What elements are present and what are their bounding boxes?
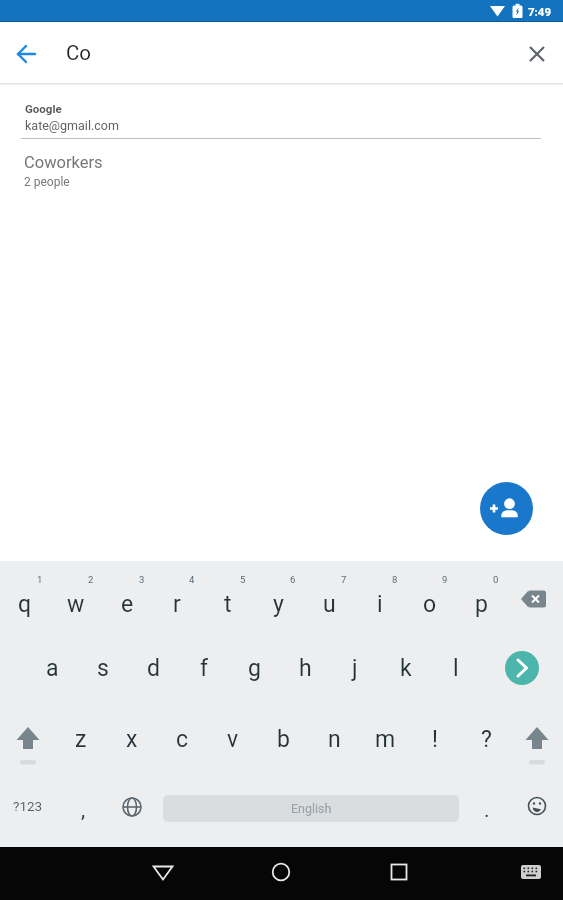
staticText: q bbox=[18, 591, 32, 618]
button[interactable] bbox=[114, 789, 150, 825]
staticText: w bbox=[67, 591, 85, 618]
button[interactable] bbox=[0, 142, 563, 192]
staticText: f bbox=[200, 655, 208, 682]
staticText: p bbox=[475, 591, 488, 618]
staticText: ? bbox=[481, 726, 492, 753]
button[interactable] bbox=[0, 90, 563, 138]
staticText: s bbox=[97, 655, 109, 682]
staticText: ! bbox=[432, 726, 438, 753]
staticText: b bbox=[277, 726, 290, 753]
staticText: j bbox=[352, 655, 358, 682]
button[interactable]: m bbox=[345, 719, 425, 759]
staticText: ?123 bbox=[13, 798, 43, 814]
button[interactable]: o bbox=[390, 584, 470, 624]
staticText: Google bbox=[25, 102, 62, 115]
staticText: . bbox=[484, 798, 490, 823]
button[interactable]: u bbox=[289, 584, 369, 624]
staticText: u bbox=[323, 591, 336, 618]
button[interactable] bbox=[505, 651, 539, 685]
button[interactable] bbox=[381, 854, 417, 890]
button[interactable]: y bbox=[238, 584, 318, 624]
button[interactable]: q bbox=[0, 584, 65, 624]
staticText: x bbox=[126, 726, 138, 753]
button[interactable] bbox=[517, 720, 557, 770]
staticText: o bbox=[423, 591, 437, 618]
button[interactable]: g bbox=[214, 648, 294, 688]
button[interactable]: ! bbox=[395, 719, 475, 759]
button[interactable]: l bbox=[416, 648, 496, 688]
staticText: kate@gmail.com bbox=[25, 118, 119, 133]
button[interactable]: e bbox=[87, 584, 167, 624]
button[interactable]: a bbox=[12, 648, 92, 688]
staticText: l bbox=[453, 655, 459, 682]
staticText: m bbox=[375, 726, 396, 753]
staticText: n bbox=[328, 726, 341, 753]
staticText: 2 people bbox=[24, 175, 70, 189]
button[interactable] bbox=[519, 788, 555, 824]
staticText: r bbox=[173, 591, 181, 618]
staticText: 6 bbox=[290, 574, 296, 585]
button[interactable]: b bbox=[243, 719, 323, 759]
staticText: 5 bbox=[240, 574, 246, 585]
button[interactable]: , bbox=[43, 790, 123, 830]
button[interactable]: v bbox=[193, 719, 273, 759]
staticText: i bbox=[377, 591, 383, 618]
staticText: 1 bbox=[37, 574, 43, 585]
button[interactable]: . bbox=[447, 790, 527, 830]
staticText: , bbox=[81, 798, 86, 823]
button[interactable] bbox=[515, 580, 555, 618]
button[interactable]: t bbox=[188, 584, 268, 624]
staticText: Coworkers bbox=[24, 153, 103, 172]
button[interactable]: s bbox=[63, 648, 143, 688]
staticText: e bbox=[121, 591, 134, 618]
staticText: d bbox=[147, 655, 160, 682]
staticText: Co bbox=[66, 41, 92, 65]
button[interactable]: z bbox=[41, 719, 121, 759]
button[interactable]: n bbox=[294, 719, 374, 759]
staticText: h bbox=[299, 655, 312, 682]
staticText: English bbox=[291, 801, 332, 816]
staticText: t bbox=[224, 591, 232, 618]
button[interactable] bbox=[145, 854, 181, 890]
staticText: 9 bbox=[442, 574, 448, 585]
staticText: 7 bbox=[341, 574, 347, 585]
button[interactable]: x bbox=[92, 719, 172, 759]
button[interactable]: English bbox=[163, 795, 459, 822]
staticText: 7:49 bbox=[528, 5, 552, 18]
staticText: 3 bbox=[139, 574, 145, 585]
staticText: 0 bbox=[493, 574, 499, 585]
button[interactable]: c bbox=[142, 719, 222, 759]
staticText: c bbox=[176, 726, 189, 753]
button[interactable]: w bbox=[36, 584, 116, 624]
staticText: y bbox=[273, 591, 284, 618]
button[interactable] bbox=[10, 38, 42, 70]
button[interactable]: ? bbox=[446, 719, 526, 759]
button[interactable] bbox=[480, 482, 533, 535]
button[interactable]: j bbox=[315, 648, 395, 688]
button[interactable]: i bbox=[340, 584, 420, 624]
staticText: 8 bbox=[392, 574, 398, 585]
staticText: k bbox=[400, 655, 412, 682]
button[interactable] bbox=[8, 720, 48, 770]
button[interactable] bbox=[521, 38, 553, 70]
staticText: g bbox=[248, 655, 261, 682]
button[interactable]: d bbox=[113, 648, 193, 688]
button[interactable]: r bbox=[137, 584, 217, 624]
staticText: 2 bbox=[88, 574, 94, 585]
button[interactable] bbox=[513, 854, 549, 890]
button[interactable] bbox=[263, 854, 299, 890]
staticText: a bbox=[46, 655, 59, 682]
button[interactable]: h bbox=[265, 648, 345, 688]
button[interactable]: p bbox=[441, 584, 521, 624]
staticText: v bbox=[227, 726, 239, 753]
button[interactable]: k bbox=[366, 648, 446, 688]
staticText: 4 bbox=[189, 574, 195, 585]
staticText: z bbox=[75, 726, 87, 753]
button[interactable]: f bbox=[164, 648, 244, 688]
button[interactable]: ?123 bbox=[0, 786, 68, 826]
